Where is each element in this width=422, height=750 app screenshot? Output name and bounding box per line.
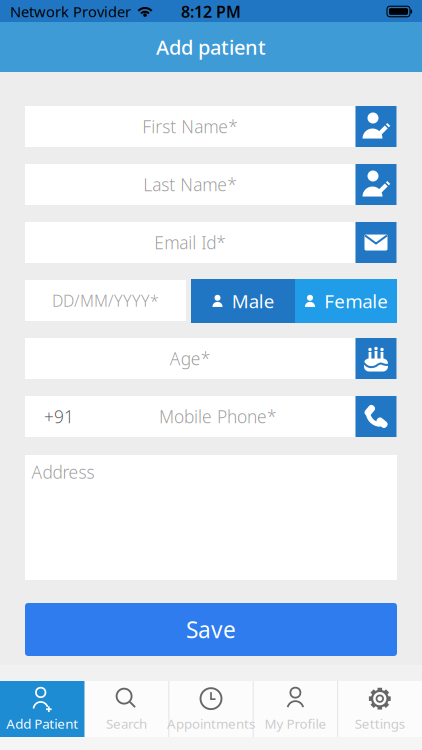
button[interactable]: +91 <box>25 396 396 437</box>
button[interactable]: Add Patient <box>0 681 84 737</box>
staticText: Address <box>31 460 94 483</box>
button[interactable]: Female <box>295 279 397 323</box>
staticText: Mobile Phone* <box>159 405 277 428</box>
staticText: DD/MM/YYYY* <box>52 290 159 311</box>
staticText: Appointments <box>167 715 255 732</box>
button[interactable]: Search <box>85 681 169 737</box>
button[interactable]: Appointments <box>167 681 255 737</box>
staticText: Search <box>106 715 147 732</box>
staticText: Female <box>324 289 388 313</box>
staticText: Settings <box>355 715 405 732</box>
staticText: Last Name* <box>143 173 237 196</box>
button[interactable]: Address <box>25 455 397 580</box>
staticText: Email Id* <box>154 231 226 254</box>
staticText: Save <box>186 614 236 644</box>
staticText: +91 <box>44 405 74 428</box>
button[interactable]: DD/MM/YYYY* <box>25 280 186 321</box>
button[interactable]: Settings <box>338 681 422 737</box>
staticText: 8:12 PM <box>181 1 241 22</box>
button[interactable]: Email Id* <box>25 222 396 263</box>
staticText: Network Provider <box>10 2 131 21</box>
staticText: Age* <box>170 347 211 370</box>
button[interactable]: My Profile <box>253 681 337 737</box>
staticText: Add patient <box>156 34 266 60</box>
button[interactable]: Male <box>191 279 295 323</box>
button[interactable]: Last Name* <box>25 164 396 205</box>
button[interactable]: First Name* <box>25 106 396 147</box>
staticText: Male <box>232 289 275 313</box>
staticText: First Name* <box>142 115 238 138</box>
staticText: Add Patient <box>6 715 78 732</box>
button[interactable]: Save <box>25 603 397 656</box>
staticText: My Profile <box>264 715 326 732</box>
button[interactable]: Age* <box>25 338 396 379</box>
